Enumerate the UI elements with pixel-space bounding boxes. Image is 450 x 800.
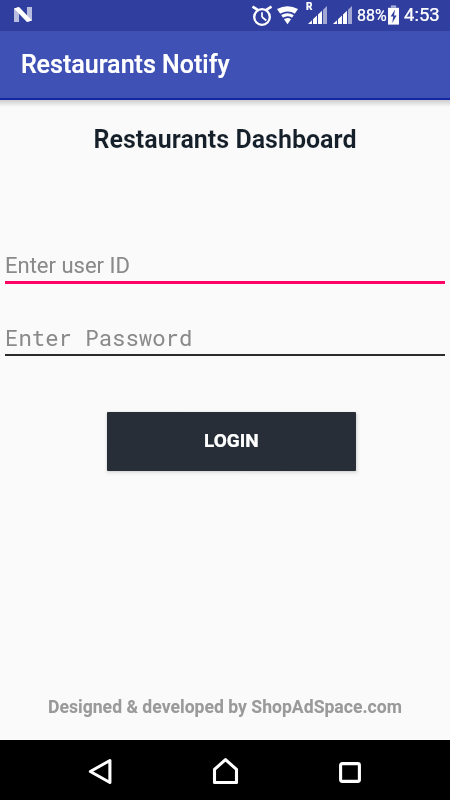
staticText: 88% <box>357 6 387 25</box>
staticText: R <box>306 1 313 13</box>
staticText: Enter user ID <box>5 253 130 279</box>
button[interactable]: Back <box>50 740 150 800</box>
staticText: Enter Password <box>5 323 193 352</box>
button[interactable]: LOGIN <box>107 412 356 471</box>
staticText: Designed & developed by ShopAdSpace.com <box>0 697 450 718</box>
staticText: Restaurants Notify <box>21 50 230 79</box>
button[interactable]: Home <box>175 740 275 800</box>
button[interactable]: Recent apps <box>300 740 400 800</box>
staticText: Restaurants Dashboard <box>0 125 450 154</box>
staticText: 4:53 <box>404 4 440 26</box>
staticText: LOGIN <box>204 429 259 451</box>
